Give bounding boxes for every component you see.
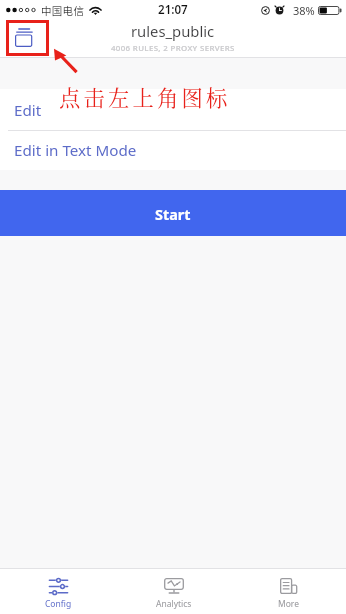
staticText: Config [45, 598, 72, 610]
button[interactable]: Analytics [116, 569, 231, 614]
button[interactable]: More [231, 569, 346, 614]
staticText: 21:07 [158, 2, 188, 18]
button[interactable]: Edit in Text Mode [0, 131, 346, 170]
staticText: Edit in Text Mode [14, 140, 137, 161]
button[interactable]: Config [0, 569, 116, 614]
staticText: More [278, 598, 299, 610]
staticText: 中国电信 [41, 3, 85, 18]
button[interactable]: Profiles [10, 23, 38, 51]
staticText: Analytics [156, 598, 192, 610]
staticText: rules_public [131, 21, 215, 41]
staticText: Start [155, 205, 191, 225]
button[interactable]: Start [0, 190, 346, 236]
staticText: Edit [14, 100, 42, 121]
staticText: 38% [293, 3, 315, 18]
staticText: 4006 RULES, 2 PROXY SERVERS [111, 43, 235, 54]
staticText: 点击左上角图标 [59, 81, 231, 112]
button[interactable]: Edit [0, 89, 346, 130]
